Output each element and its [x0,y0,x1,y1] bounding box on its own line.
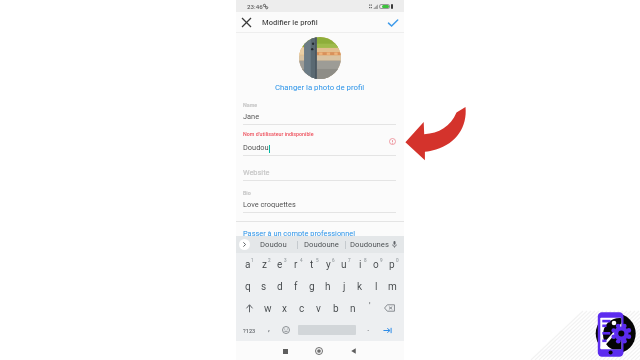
staticText: b [333,303,339,315]
button[interactable]: u [336,253,352,275]
staticText: c [299,303,305,315]
staticText: 7 [348,258,351,263]
staticText: Jane [243,112,260,121]
button[interactable]: Recents [278,344,292,358]
button[interactable]: a [239,253,256,275]
staticText: w [264,303,272,315]
button[interactable]: c [293,297,310,319]
staticText: d [277,281,283,293]
button[interactable]: , [260,319,278,341]
button[interactable]: Close [240,16,253,29]
staticText: Doudou [260,240,287,249]
staticText: z [262,259,267,271]
button[interactable]: Next [375,319,400,341]
staticText: 4 [300,258,303,263]
staticText: Doudoune [304,240,339,249]
staticText: r [294,259,298,271]
button[interactable]: t [304,253,320,275]
staticText: , [268,323,270,334]
button[interactable]: q [239,275,256,297]
staticText: Modifier le profil [262,18,318,27]
staticText: Doudou [243,143,269,152]
button[interactable]: Changer la photo de profil [236,83,404,92]
staticText: ' [369,301,371,312]
button[interactable]: b [327,297,344,319]
staticText: s [261,281,267,293]
button[interactable]: d [272,275,288,297]
button[interactable]: m [384,275,400,297]
button[interactable]: v [310,297,327,319]
other: Site logo [0,0,640,360]
staticText: ?123 [243,328,256,335]
button[interactable]: Back [346,344,360,358]
button[interactable]: s [256,275,272,297]
staticText: e [277,259,283,271]
button[interactable]: f [288,275,304,297]
staticText: Website [243,168,270,177]
button[interactable]: Backspace [378,297,400,319]
button[interactable]: . [361,319,375,341]
staticText: v [316,303,321,315]
staticText: 0 [396,258,399,263]
button[interactable]: More suggestions [239,239,250,250]
staticText: 2 [268,258,271,263]
button[interactable]: e [272,253,288,275]
button[interactable]: h [320,275,336,297]
button[interactable]: ?123 [239,319,260,341]
button[interactable]: r [288,253,304,275]
staticText: l [375,281,378,293]
button[interactable]: Voice input [389,239,400,250]
button[interactable]: j [336,275,352,297]
staticText: Passer à un compte professionnel [243,229,355,238]
button[interactable]: Doudounes [346,236,393,253]
button[interactable]: y [320,253,336,275]
button[interactable]: z [256,253,272,275]
button[interactable]: l [368,275,384,297]
staticText: . [367,323,370,334]
button[interactable]: g [304,275,320,297]
button[interactable]: k [352,275,368,297]
staticText: g [309,281,315,293]
button[interactable]: Doudoune [298,236,345,253]
staticText: y [326,259,331,271]
staticText: 23:46 [247,3,263,10]
staticText: Doudounes [350,240,389,249]
staticText: x [282,303,287,315]
staticText: u [341,259,347,271]
button[interactable]: w [260,297,276,319]
button[interactable]: Confirm [386,16,399,29]
staticText: p [389,259,395,271]
button[interactable]: Home [312,344,326,358]
button[interactable]: o [368,253,384,275]
staticText: j [343,281,346,293]
button[interactable]: Passer à un compte professionnel [243,229,355,238]
staticText: f [294,281,298,293]
staticText: i [359,259,362,271]
staticText: k [357,281,363,293]
staticText: Bio [243,190,251,196]
button[interactable]: i [352,253,368,275]
button[interactable]: p [384,253,400,275]
staticText: 5 [316,258,319,263]
staticText: q [245,281,251,293]
staticText: m [388,281,397,293]
button[interactable]: Doudou [250,236,297,253]
staticText: t [310,259,314,271]
staticText: 9 [380,258,383,263]
staticText: n [350,303,356,315]
staticText: Love croquettes [243,200,296,209]
staticText: a [245,259,251,271]
staticText: h [325,281,331,293]
staticText: 8 [364,258,367,263]
button[interactable]: x [276,297,293,319]
button[interactable]: Shift [239,297,260,319]
button[interactable]: Emoji [278,319,293,341]
button[interactable]: ' [361,297,378,319]
staticText: Changer la photo de profil [275,83,365,92]
button[interactable]: n [344,297,361,319]
staticText: o [373,259,379,271]
staticText: Name [243,102,258,108]
button[interactable]: Profile photo [299,37,341,79]
staticText: 6 [332,258,335,263]
